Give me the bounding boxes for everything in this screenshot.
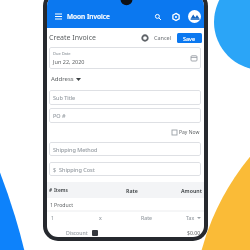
staticText: Jun 22, 2020: [53, 58, 85, 65]
button[interactable]: $: [49, 162, 201, 176]
staticText: Tax: [186, 214, 195, 221]
button[interactable]: Pay Now: [171, 128, 201, 137]
staticText: Amount: [181, 187, 202, 194]
staticText: Shipping Cost: [59, 166, 95, 173]
button[interactable]: Due Date: [49, 47, 201, 69]
staticText: Moon Invoice: [67, 12, 110, 21]
staticText: Items: [54, 187, 68, 194]
button[interactable]: Tax: [186, 214, 201, 221]
staticText: Pay Now: [179, 129, 200, 136]
button[interactable]: 1: [47, 198, 204, 211]
button[interactable]: Menu: [53, 11, 64, 22]
button[interactable]: Cancel: [152, 31, 174, 44]
staticText: Shipping Method: [53, 146, 98, 153]
staticText: $: [53, 166, 57, 173]
staticText: Product: [54, 201, 74, 208]
button[interactable]: Shipping Method: [49, 142, 201, 156]
staticText: Discount: [66, 229, 88, 236]
button[interactable]: Invoice settings: [139, 32, 150, 43]
button[interactable]: Address: [49, 73, 83, 85]
button[interactable]: PO #: [49, 108, 201, 123]
staticText: 1: [51, 214, 54, 221]
staticText: x: [99, 214, 102, 221]
staticText: 1: [50, 201, 53, 208]
staticText: $0.00: [187, 229, 201, 236]
button[interactable]: Profile: [188, 10, 201, 23]
button[interactable]: Discount: [66, 229, 98, 236]
staticText: Rate: [141, 214, 152, 221]
button[interactable]: #: [47, 182, 204, 198]
staticText: Save: [183, 35, 196, 42]
staticText: Cancel: [154, 34, 172, 41]
staticText: PO #: [53, 112, 66, 119]
staticText: Rate: [126, 187, 138, 194]
staticText: #: [49, 187, 53, 194]
staticText: Due Date: [53, 51, 71, 56]
button[interactable]: Settings: [170, 11, 181, 22]
staticText: Create Invoice: [49, 33, 96, 43]
button[interactable]: Search: [152, 11, 163, 22]
button[interactable]: Save: [177, 33, 202, 43]
staticText: Sub Title: [53, 94, 76, 101]
other: Edit discount: [92, 230, 98, 236]
button[interactable]: Sub Title: [49, 90, 201, 105]
staticText: Address: [51, 75, 74, 83]
